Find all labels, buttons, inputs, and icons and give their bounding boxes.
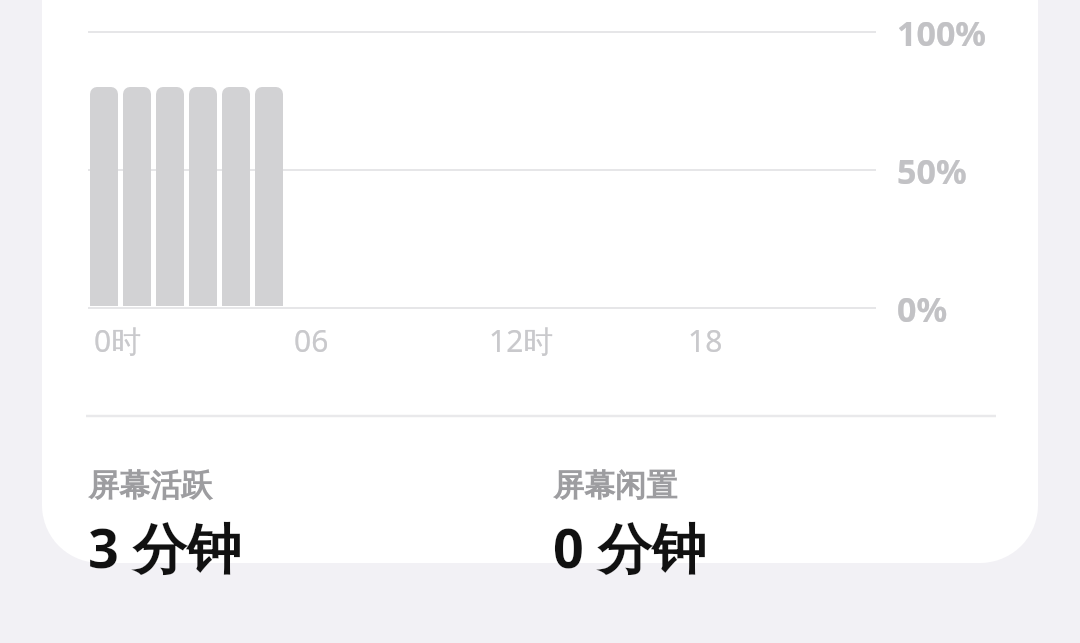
button[interactable]: 屏幕闲置 bbox=[553, 462, 973, 592]
staticText: 50% bbox=[897, 148, 967, 194]
other: Screen time chart bbox=[0, 0, 1080, 643]
staticText: 06 bbox=[294, 320, 329, 361]
staticText: 3 分钟 bbox=[88, 510, 241, 584]
button[interactable]: 屏幕活跃 bbox=[88, 462, 508, 592]
staticText: 0 分钟 bbox=[553, 510, 706, 584]
staticText: 屏幕闲置 bbox=[553, 466, 677, 505]
staticText: 屏幕活跃 bbox=[88, 466, 212, 505]
staticText: 0% bbox=[897, 286, 948, 332]
staticText: 100% bbox=[897, 10, 987, 56]
staticText: 12时 bbox=[489, 320, 554, 361]
staticText: 18 bbox=[688, 320, 723, 361]
button[interactable] bbox=[42, 0, 1038, 563]
staticText: 0时 bbox=[94, 320, 142, 361]
